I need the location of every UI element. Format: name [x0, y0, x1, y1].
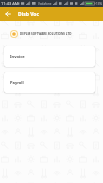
staticText: DEPLM SOFTWARE SOLUTIONS LTD — [20, 32, 72, 36]
staticText: Invoice — [10, 54, 25, 59]
staticText: 11:43 AM — [1, 1, 19, 6]
staticText: 13% — [96, 2, 102, 6]
staticText: Payroll — [10, 80, 24, 85]
staticText: Disb Voc — [18, 11, 39, 18]
button[interactable]: Back — [0, 7, 15, 21]
button[interactable]: Invoice — [4, 46, 95, 67]
staticText: Vodafone — [38, 2, 52, 6]
button[interactable]: Payroll — [4, 72, 95, 93]
